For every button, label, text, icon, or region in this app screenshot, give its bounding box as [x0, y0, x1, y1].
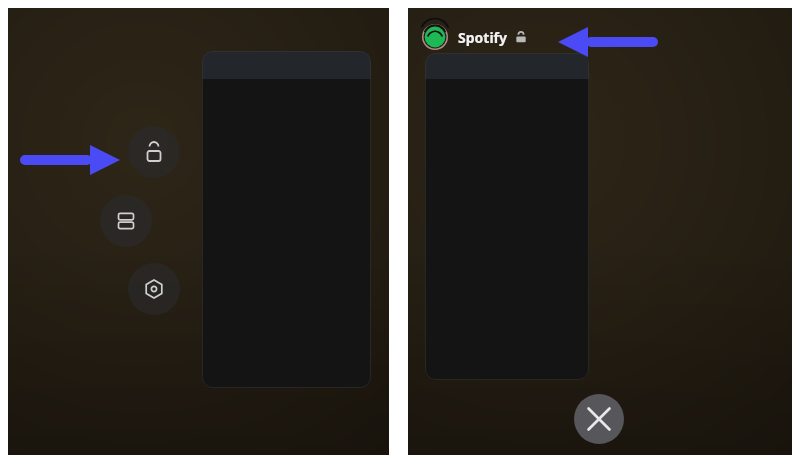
button[interactable]: Close all	[574, 394, 624, 444]
button[interactable]: App info	[128, 263, 180, 315]
button[interactable]: Split screen	[100, 195, 152, 247]
button[interactable]: Spotify	[422, 22, 527, 52]
button[interactable]	[202, 51, 371, 388]
button[interactable]	[425, 53, 589, 380]
button[interactable]: Lock app	[128, 126, 180, 178]
staticText: Spotify	[458, 28, 507, 47]
